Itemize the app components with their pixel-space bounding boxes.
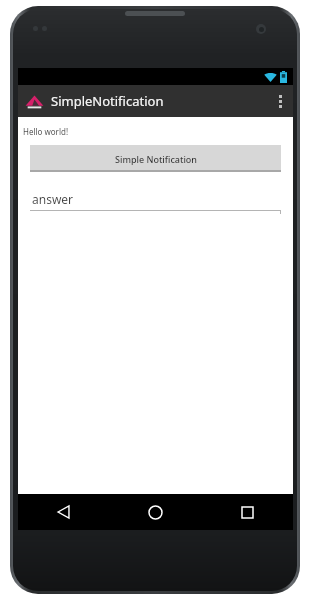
staticText: answer [32,191,74,207]
button[interactable]: Simple Notification [30,145,281,172]
other: App icon [25,92,44,111]
button[interactable]: answer [30,191,281,214]
button[interactable]: Back [18,494,109,530]
staticText: Simple Notification [115,153,197,165]
button[interactable]: Home [109,494,201,530]
button[interactable]: More options [267,85,293,117]
staticText: SimpleNotification [51,92,164,110]
staticText: Hello world! [23,126,69,137]
button[interactable]: Recent apps [201,494,293,530]
